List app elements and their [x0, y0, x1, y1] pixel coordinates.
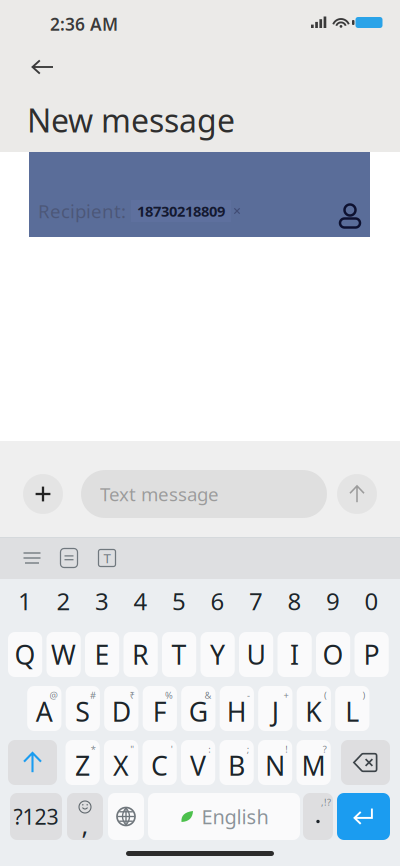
button[interactable]: Shift — [8, 740, 57, 785]
staticText: 1 — [18, 585, 32, 617]
button[interactable]: Z — [65, 740, 100, 785]
staticText: G — [189, 694, 208, 729]
button[interactable]: Backspace — [341, 740, 390, 785]
button[interactable]: 1 — [8, 588, 42, 614]
button[interactable]: Text message — [81, 470, 327, 518]
staticText: B — [228, 748, 245, 783]
button[interactable]: G — [181, 686, 215, 731]
button[interactable]: 7 — [239, 588, 273, 614]
staticText: @ — [49, 689, 57, 701]
staticText: - — [247, 689, 250, 701]
staticText: R — [132, 637, 149, 672]
button[interactable]: Menu — [16, 547, 48, 569]
button[interactable]: Text style — [94, 545, 120, 571]
button[interactable]: N — [258, 740, 292, 785]
button[interactable]: ?123 — [10, 793, 62, 840]
button[interactable]: F — [143, 686, 177, 731]
button[interactable]: Y — [200, 632, 235, 677]
button[interactable]: S — [66, 686, 100, 731]
staticText: ?123 — [13, 802, 58, 831]
staticText: 9 — [326, 585, 340, 617]
button[interactable]: E — [85, 632, 119, 677]
staticText: ! — [285, 743, 288, 755]
staticText: M — [302, 748, 326, 783]
button[interactable]: D — [104, 686, 138, 731]
staticText: J — [272, 694, 279, 729]
button[interactable]: Add contact — [330, 196, 370, 236]
button[interactable]: Enter — [337, 793, 390, 840]
button[interactable]: V — [181, 740, 215, 785]
staticText: T — [172, 637, 187, 672]
staticText: O — [323, 637, 344, 672]
button[interactable]: 3 — [85, 588, 119, 614]
staticText: Recipient: — [38, 199, 126, 223]
staticText: 3 — [95, 585, 109, 617]
staticText: # — [90, 689, 96, 701]
staticText: ( — [324, 689, 327, 701]
staticText: , — [81, 808, 88, 842]
button[interactable]: ,!? — [303, 793, 333, 840]
button[interactable]: T — [162, 632, 196, 677]
button[interactable]: 8 — [277, 588, 312, 614]
staticText: Text message — [100, 482, 219, 506]
button[interactable]: I — [277, 632, 312, 677]
button[interactable]: 4 — [123, 588, 158, 614]
staticText: P — [364, 637, 380, 672]
staticText: English — [201, 803, 268, 830]
button[interactable]: U — [239, 632, 273, 677]
button[interactable]: K — [297, 686, 331, 731]
staticText: F — [153, 694, 167, 729]
button[interactable]: B — [219, 740, 254, 785]
button[interactable]: M — [296, 740, 331, 785]
button[interactable]: 5 — [162, 588, 196, 614]
staticText: X — [113, 748, 129, 783]
staticText: E — [95, 637, 110, 672]
staticText: Y — [210, 637, 225, 672]
staticText: 7 — [249, 585, 263, 617]
staticText: N — [265, 748, 285, 783]
staticText: Z — [75, 748, 90, 783]
button[interactable]: 2 — [46, 588, 81, 614]
staticText: 4 — [134, 585, 148, 617]
staticText: I — [290, 637, 299, 672]
button[interactable]: J — [258, 686, 292, 731]
button[interactable]: Clipboard — [56, 545, 82, 571]
button[interactable]: 6 — [200, 588, 235, 614]
button[interactable]: Back — [20, 52, 66, 82]
staticText: L — [345, 694, 359, 729]
staticText: U — [247, 637, 266, 672]
staticText: C — [151, 748, 168, 783]
button[interactable]: 9 — [316, 588, 350, 614]
button[interactable]: H — [220, 686, 254, 731]
staticText: 8 — [288, 585, 302, 617]
staticText: 5 — [172, 585, 186, 617]
button[interactable]: Emoji — [67, 793, 103, 840]
button[interactable]: C — [142, 740, 177, 785]
button[interactable]: Send — [337, 474, 377, 514]
button[interactable]: A — [27, 686, 61, 731]
button[interactable]: W — [46, 632, 81, 677]
button[interactable]: R — [123, 632, 158, 677]
staticText: H — [227, 694, 247, 729]
staticText: & — [204, 689, 211, 701]
button[interactable]: Q — [8, 632, 42, 677]
staticText: ₹ — [129, 689, 134, 701]
button[interactable]: X — [104, 740, 138, 785]
button[interactable]: 0 — [354, 588, 389, 614]
staticText: : — [208, 743, 211, 755]
staticText: " — [130, 743, 134, 755]
button[interactable]: Space — [148, 793, 300, 840]
button[interactable]: Add attachment — [23, 474, 63, 514]
staticText: 2:36 AM — [50, 12, 118, 35]
staticText: ,!? — [321, 796, 331, 808]
staticText: 18730218809 — [137, 201, 225, 221]
button[interactable]: O — [316, 632, 350, 677]
staticText: ) — [362, 689, 365, 701]
button[interactable]: L — [335, 686, 369, 731]
staticText: ? — [323, 743, 327, 755]
staticText: ' — [171, 743, 173, 755]
staticText: D — [112, 694, 131, 729]
staticText: S — [75, 694, 90, 729]
button[interactable]: Change language — [108, 793, 144, 840]
button[interactable]: P — [354, 632, 389, 677]
